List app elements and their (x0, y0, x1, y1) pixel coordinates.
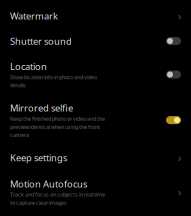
staticText: Location (10, 60, 47, 73)
button[interactable]: Location (0, 53, 191, 95)
staticText: Keep settings (10, 151, 67, 164)
staticText: Track and focus on subjects in real time (10, 191, 105, 198)
staticText: › (178, 150, 181, 165)
button[interactable]: Watermark (0, 3, 191, 29)
staticText: Show location info in photo and video (10, 74, 97, 81)
staticText: camera (10, 131, 29, 138)
staticText: Keep the finished photo or video and the (10, 115, 105, 122)
staticText: Mirrored selfie (10, 102, 73, 114)
staticText: › (178, 185, 181, 199)
staticText: preview identical when using the front (10, 123, 100, 130)
button[interactable]: Motion Autofocus (0, 171, 191, 212)
button[interactable]: Keep settings (0, 144, 191, 171)
staticText: Shutter sound (10, 35, 72, 47)
button[interactable]: Mirrored selfie (0, 95, 191, 144)
staticText: Watermark (10, 10, 58, 22)
staticText: › (178, 9, 181, 23)
staticText: details (10, 82, 26, 89)
staticText: to capture clear images (10, 199, 67, 206)
staticText: Motion Autofocus (10, 178, 87, 190)
button[interactable]: Shutter sound (0, 29, 191, 53)
